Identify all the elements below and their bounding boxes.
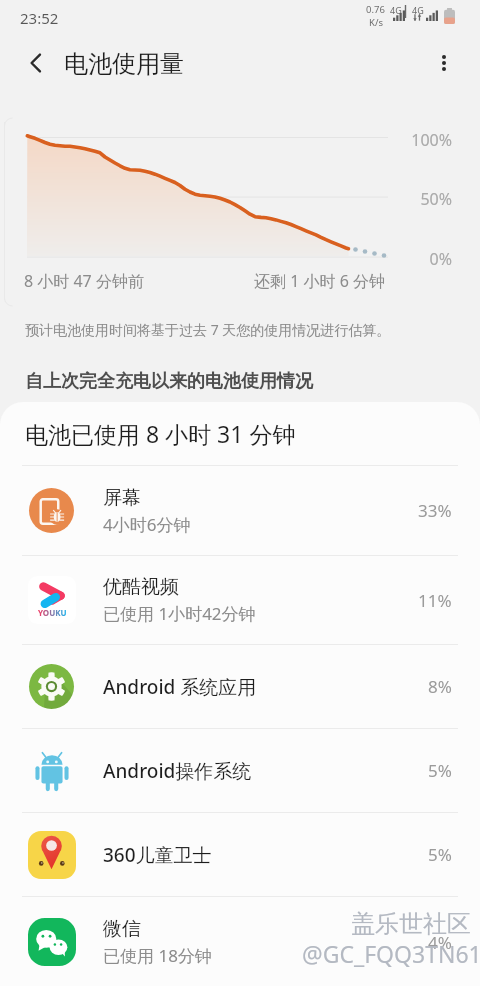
- staticText: 已使用 1小时42分钟: [103, 602, 256, 625]
- staticText: 自上次完全充电以来的电池使用情况: [25, 370, 313, 393]
- button[interactable]: Back: [14, 41, 58, 85]
- button[interactable]: 屏幕: [0, 466, 480, 555]
- staticText: 预计电池使用时间将基于过去 7 天您的使用情况进行估算。: [25, 320, 391, 339]
- staticText: 4G: [412, 4, 424, 16]
- staticText: 屏幕: [103, 486, 141, 510]
- staticText: Android操作系统: [103, 758, 252, 784]
- staticText: 5%: [428, 843, 452, 866]
- button[interactable]: 微信: [0, 897, 480, 986]
- staticText: 100%: [392, 129, 452, 151]
- staticText: 8 小时 47 分钟前: [24, 270, 144, 292]
- staticText: @GC_FQQ3TN61: [302, 938, 480, 969]
- staticText: 还剩 1 小时 6 分钟: [254, 270, 385, 292]
- button[interactable]: Android 系统应用: [0, 645, 480, 728]
- button[interactable]: YOUKU: [0, 556, 480, 644]
- staticText: 已使用 18分钟: [103, 944, 212, 967]
- staticText: 5%: [428, 759, 452, 782]
- staticText: 33%: [418, 499, 452, 522]
- staticText: 优酷视频: [103, 575, 179, 599]
- button[interactable]: More options: [422, 41, 466, 85]
- staticText: 4小时6分钟: [103, 513, 191, 536]
- staticText: 4%: [428, 931, 452, 954]
- staticText: 盖乐世社区: [351, 909, 471, 939]
- staticText: 0%: [392, 248, 452, 270]
- staticText: 8%: [428, 675, 452, 698]
- staticText: 23:52: [20, 8, 59, 28]
- staticText: 电池使用量: [64, 49, 184, 79]
- staticText: 0.76: [366, 3, 385, 16]
- button[interactable]: 360儿童卫士: [0, 813, 480, 896]
- staticText: 4G: [390, 4, 402, 16]
- staticText: Android 系统应用: [103, 674, 257, 700]
- staticText: 50%: [392, 188, 452, 210]
- button[interactable]: Android操作系统: [0, 729, 480, 812]
- staticText: 360儿童卫士: [103, 842, 212, 868]
- staticText: K/s: [369, 16, 383, 29]
- staticText: 电池已使用 8 小时 31 分钟: [25, 418, 296, 449]
- staticText: 11%: [418, 589, 452, 612]
- staticText: YOUKU: [38, 607, 67, 618]
- staticText: 微信: [103, 917, 141, 941]
